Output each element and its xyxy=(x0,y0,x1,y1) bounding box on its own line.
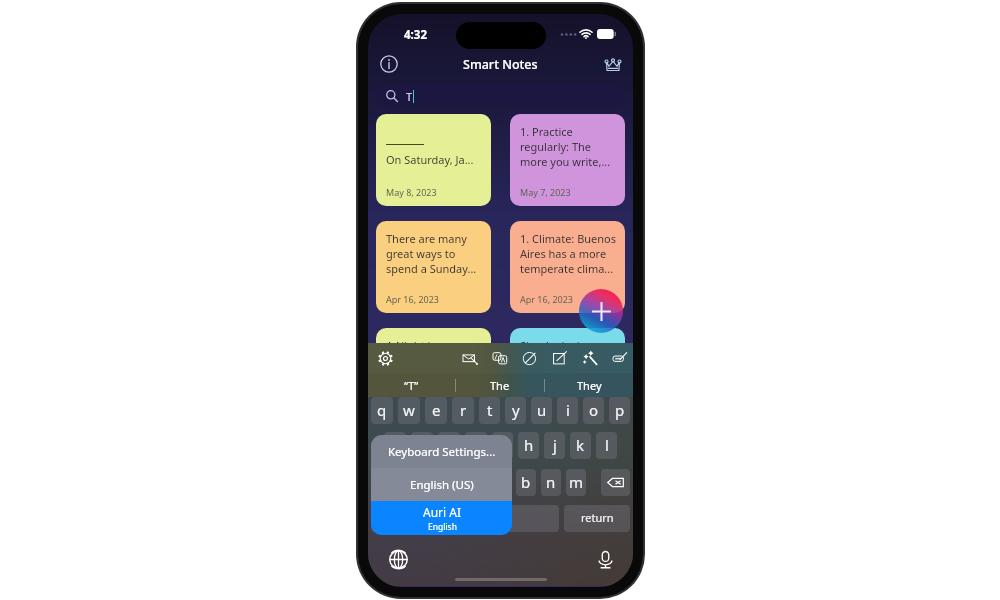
staticText: b xyxy=(521,472,531,492)
staticText: r xyxy=(460,400,467,420)
staticText: May 7, 2023 xyxy=(520,186,571,198)
staticText: Simple duck r... xyxy=(520,338,598,353)
staticText: May 8, 2023 xyxy=(386,186,437,198)
button[interactable]: Keyboard settings xyxy=(374,347,396,369)
button[interactable]: y xyxy=(505,397,526,424)
staticText: On Saturday, Ja... xyxy=(386,152,474,167)
staticText: There are many great ways to spend a Sun… xyxy=(386,231,485,276)
button[interactable]: z xyxy=(416,469,436,496)
button[interactable]: p xyxy=(609,397,630,424)
button[interactable]: A Night in... xyxy=(376,328,491,420)
staticText: Auri AI xyxy=(423,504,461,520)
button[interactable]: On Saturday, Ja... xyxy=(376,114,491,206)
button[interactable]: “T” xyxy=(368,373,455,397)
staticText: t xyxy=(487,400,493,420)
staticText: x xyxy=(447,472,455,492)
staticText: The xyxy=(490,378,510,393)
staticText: i xyxy=(566,400,570,420)
button[interactable]: n xyxy=(541,469,561,496)
staticText: T xyxy=(406,89,413,104)
button[interactable]: x xyxy=(441,469,461,496)
button[interactable]: Switch keyboard xyxy=(386,547,410,571)
button[interactable]: Backspace xyxy=(601,469,630,496)
button[interactable]: m xyxy=(566,469,586,496)
button[interactable]: Mail xyxy=(459,347,481,369)
staticText: Apr 16, 2023 xyxy=(520,293,573,305)
staticText: s xyxy=(418,435,426,455)
button[interactable]: T xyxy=(376,85,625,107)
button[interactable]: a xyxy=(384,432,406,459)
button[interactable]: Simple duck r... xyxy=(510,328,625,420)
button[interactable]: w xyxy=(398,397,420,424)
button[interactable]: Compose xyxy=(549,347,571,369)
button[interactable]: They xyxy=(545,373,633,397)
button[interactable]: return xyxy=(564,505,630,532)
button[interactable]: g xyxy=(492,432,513,459)
button[interactable]: Emoji xyxy=(415,505,441,532)
button[interactable]: s xyxy=(411,432,433,459)
button[interactable]: b xyxy=(516,469,536,496)
button[interactable]: u xyxy=(531,397,552,424)
staticText: k xyxy=(576,435,585,455)
staticText: h xyxy=(524,435,534,455)
button[interactable]: 1. Climate: Buenos Aires has a more temp… xyxy=(510,221,625,313)
staticText: Keyboard Settings... xyxy=(388,444,496,460)
staticText: y xyxy=(512,400,520,420)
button[interactable]: Rewrite xyxy=(519,347,541,369)
button[interactable]: e xyxy=(425,397,447,424)
button[interactable]: t xyxy=(479,397,500,424)
staticText: j xyxy=(553,435,557,455)
button[interactable]: q xyxy=(371,397,393,424)
button[interactable]: Premium xyxy=(599,50,627,78)
staticText: e xyxy=(432,400,441,420)
button[interactable]: j xyxy=(544,432,565,459)
button[interactable]: o xyxy=(583,397,604,424)
button[interactable]: d xyxy=(438,432,460,459)
button[interactable]: Keyboard Settings... xyxy=(371,435,512,468)
button[interactable]: i xyxy=(557,397,578,424)
staticText: Apr 16, 2023 xyxy=(386,293,439,305)
staticText: “T” xyxy=(404,378,419,393)
button[interactable]: Magic xyxy=(579,347,601,369)
staticText: f xyxy=(473,435,479,455)
staticText: 4:32 xyxy=(404,27,427,43)
button[interactable]: Translate xyxy=(489,347,511,369)
staticText: a xyxy=(391,435,400,455)
staticText: o xyxy=(589,400,599,420)
button[interactable]: 123 xyxy=(371,505,410,532)
staticText: 1. Climate: Buenos Aires has a more temp… xyxy=(520,231,619,276)
staticText: c xyxy=(472,472,480,492)
button[interactable]: There are many great ways to spend a Sun… xyxy=(376,221,491,313)
button[interactable]: Auri AI xyxy=(371,501,512,535)
button[interactable]: l xyxy=(596,432,617,459)
staticText: z xyxy=(422,472,430,492)
button[interactable]: c xyxy=(466,469,486,496)
button[interactable]: Dictate xyxy=(593,547,617,571)
button[interactable]: Reply xyxy=(609,347,631,369)
button[interactable]: k xyxy=(570,432,591,459)
button[interactable]: h xyxy=(518,432,539,459)
button[interactable]: f xyxy=(465,432,487,459)
staticText: m xyxy=(569,472,584,492)
staticText: n xyxy=(546,472,556,492)
staticText: l xyxy=(605,435,609,455)
button[interactable]: English (US) xyxy=(371,468,512,501)
button[interactable]: Space xyxy=(446,505,559,532)
button[interactable]: r xyxy=(452,397,474,424)
button[interactable]: Info xyxy=(375,50,403,78)
button[interactable]: Add note xyxy=(579,289,623,333)
staticText: q xyxy=(377,400,387,420)
staticText: A Night in... xyxy=(386,338,446,353)
button[interactable]: 1. Practice regularly: The more you writ… xyxy=(510,114,625,206)
staticText: 1. Practice regularly: The more you writ… xyxy=(520,124,619,169)
staticText: Smart Notes xyxy=(463,56,538,73)
staticText: return xyxy=(581,510,614,525)
staticText: u xyxy=(537,400,547,420)
button[interactable]: The xyxy=(456,373,544,397)
staticText: English (US) xyxy=(410,477,474,493)
staticText: d xyxy=(444,435,454,455)
